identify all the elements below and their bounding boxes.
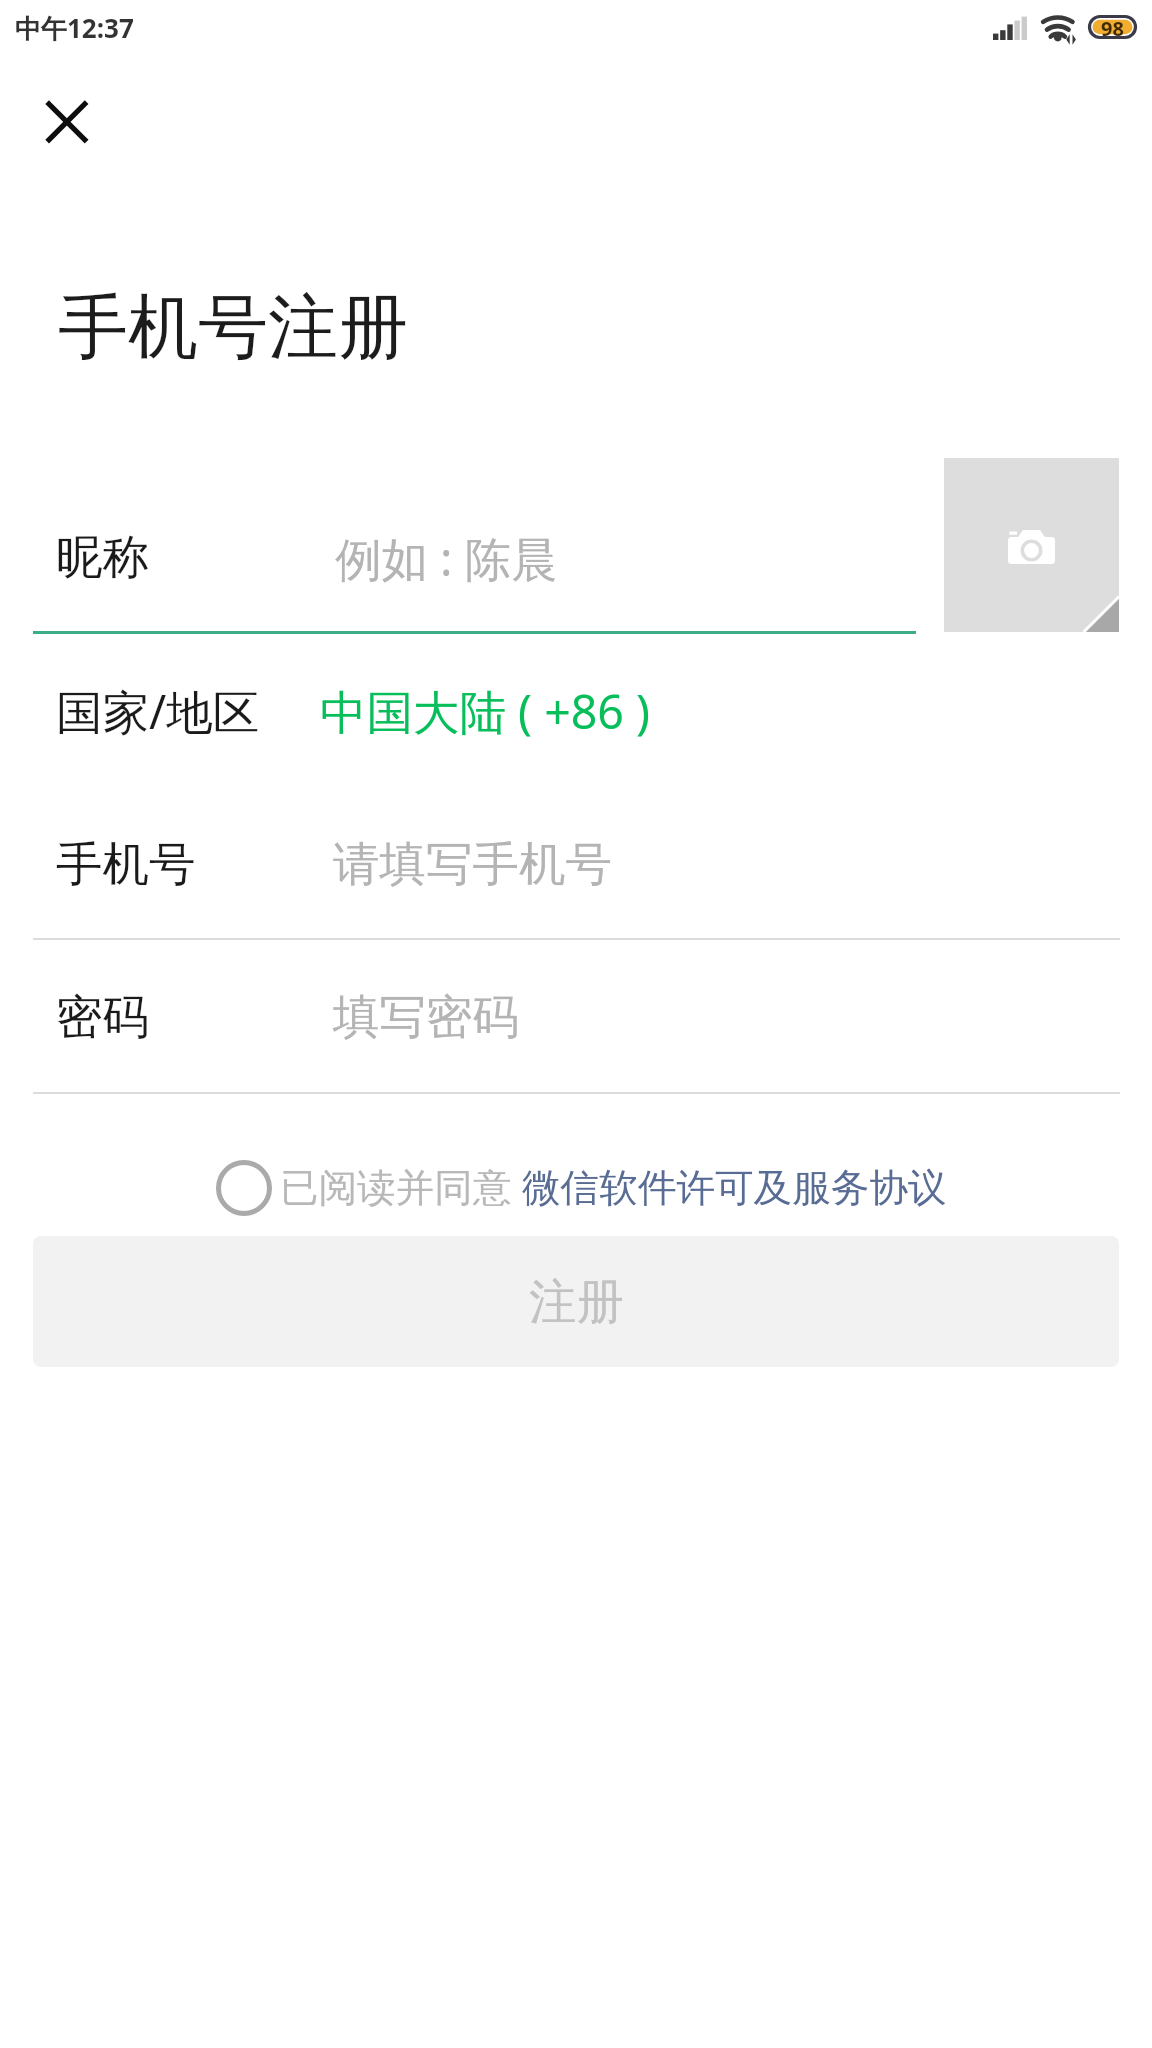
button[interactable]: 密码 [0,941,1152,1094]
staticText: 98 [1101,15,1124,39]
button[interactable]: 微信软件许可及服务协议 [522,1164,947,1213]
staticText: 填写密码 [333,988,519,1047]
staticText: 已阅读并同意 [280,1164,512,1213]
staticText: 手机号 [56,835,196,894]
staticText: 中午12:37 [15,10,134,46]
button[interactable]: 已阅读并同意 [216,1155,512,1221]
staticText: 密码 [56,988,149,1047]
button[interactable]: 昵称 [0,481,1152,634]
staticText: 注册 [529,1272,624,1332]
button[interactable]: Choose avatar [944,458,1119,632]
staticText: 中国大陆 ( +86 ) [320,679,650,743]
button[interactable]: 手机号 [0,788,1152,941]
staticText: 国家/地区 [56,679,260,743]
staticText: 例如 : 陈晨 [335,526,558,590]
button[interactable]: 国家/地区 [0,634,1152,787]
staticText: 昵称 [56,528,149,587]
button[interactable]: Close [23,78,113,168]
button[interactable]: 注册 [33,1236,1119,1367]
staticText: 手机号注册 [58,284,408,372]
staticText: 请填写手机号 [333,835,612,894]
